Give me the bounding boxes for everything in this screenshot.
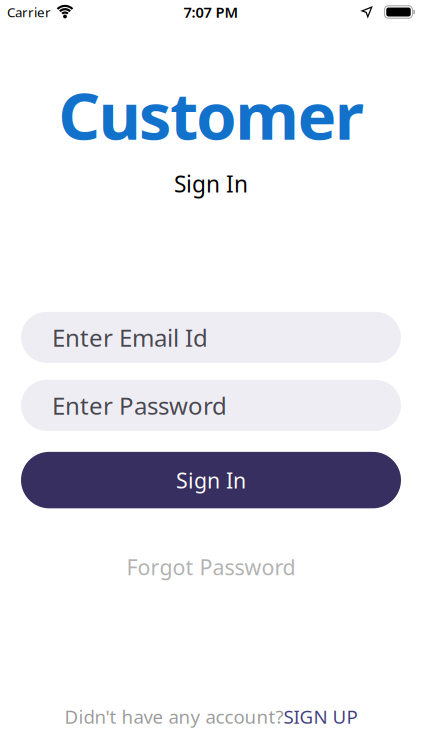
staticText: Forgot Password [126,553,295,581]
staticText: Customer [58,71,364,158]
button[interactable]: SIGN UP [283,704,357,729]
staticText: Sign In [174,169,248,199]
staticText: Enter Password [52,389,227,421]
button[interactable]: Sign In [21,452,401,508]
button[interactable]: Enter Password [21,380,401,431]
staticText: Enter Email Id [52,321,208,353]
staticText: 7:07 PM [183,2,238,22]
button[interactable]: Enter Email Id [21,312,401,363]
staticText: Carrier [7,3,51,21]
staticText: Didn't have any account? [64,704,283,729]
button[interactable]: Forgot Password [126,553,295,581]
staticText: SIGN UP [283,704,357,729]
staticText: Sign In [176,466,246,494]
